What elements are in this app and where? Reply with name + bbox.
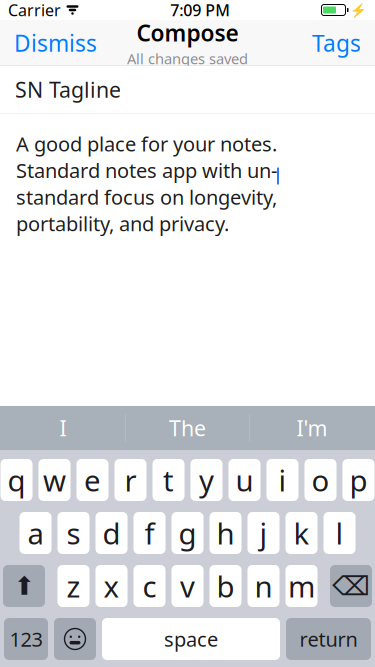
button[interactable]: space xyxy=(102,618,280,660)
staticText: x xyxy=(103,566,119,605)
staticText: m xyxy=(288,566,315,605)
staticText: u xyxy=(235,460,253,499)
staticText: f xyxy=(144,513,154,552)
staticText: b xyxy=(216,566,234,605)
staticText: A good place for your notes. Standard no… xyxy=(16,130,277,237)
button[interactable]: l xyxy=(323,512,355,554)
staticText: Compose xyxy=(136,18,238,48)
staticText: j xyxy=(259,513,267,552)
button[interactable]: The xyxy=(125,406,249,450)
staticText: p xyxy=(349,460,367,499)
staticText: Dismiss xyxy=(14,28,97,58)
staticText: space xyxy=(164,626,218,652)
staticText: s xyxy=(66,513,80,552)
button[interactable]: y xyxy=(190,459,222,501)
button[interactable]: a xyxy=(19,512,51,554)
staticText: w xyxy=(43,460,66,499)
staticText: c xyxy=(142,566,156,605)
button[interactable]: g xyxy=(171,512,203,554)
staticText: t xyxy=(163,460,174,499)
staticText: r xyxy=(124,460,136,499)
staticText: e xyxy=(84,460,101,499)
button[interactable]: return xyxy=(286,618,371,660)
staticText: n xyxy=(254,566,272,605)
staticText: All changes saved xyxy=(127,49,248,68)
button[interactable]: o xyxy=(304,459,336,501)
staticText: a xyxy=(27,513,43,552)
button[interactable]: j xyxy=(247,512,279,554)
staticText: return xyxy=(299,626,357,652)
staticText: I'm xyxy=(296,414,327,442)
button[interactable]: p xyxy=(342,459,374,501)
staticText: k xyxy=(293,513,309,552)
staticText: ⚡ xyxy=(350,2,367,18)
staticText: Carrier xyxy=(8,0,61,21)
staticText: v xyxy=(180,566,195,605)
button[interactable]: Delete xyxy=(330,565,372,607)
staticText: d xyxy=(102,513,120,552)
button[interactable]: I xyxy=(1,406,125,450)
staticText: i xyxy=(278,460,286,499)
staticText: z xyxy=(66,566,80,605)
button[interactable]: n xyxy=(247,565,279,607)
staticText: o xyxy=(311,460,329,499)
button[interactable]: f xyxy=(133,512,165,554)
button[interactable]: s xyxy=(57,512,89,554)
button[interactable]: v xyxy=(171,565,203,607)
button[interactable]: u xyxy=(228,459,260,501)
button[interactable]: d xyxy=(95,512,127,554)
button[interactable]: Shift xyxy=(3,565,45,607)
button[interactable]: I'm xyxy=(250,406,374,450)
button[interactable]: Dismiss xyxy=(0,20,111,66)
button[interactable]: Emoji keyboard xyxy=(54,618,96,660)
button[interactable]: c xyxy=(133,565,165,607)
staticText: h xyxy=(216,513,234,552)
button[interactable]: q xyxy=(0,459,32,501)
button[interactable]: m xyxy=(285,565,317,607)
staticText: The xyxy=(169,414,206,442)
button[interactable]: z xyxy=(57,565,89,607)
button[interactable]: x xyxy=(95,565,127,607)
staticText: g xyxy=(178,513,196,552)
staticText: ⬆ xyxy=(13,572,34,600)
staticText: q xyxy=(7,460,25,499)
button[interactable]: k xyxy=(285,512,317,554)
staticText: ⌫ xyxy=(332,571,370,601)
button[interactable]: t xyxy=(152,459,184,501)
staticText: SN Tagline xyxy=(15,75,121,104)
button[interactable]: h xyxy=(209,512,241,554)
staticText: l xyxy=(335,513,343,552)
staticText: Tags xyxy=(312,28,361,58)
button[interactable]: 123 xyxy=(4,618,48,660)
staticText: 7:09 PM xyxy=(170,0,230,21)
button[interactable]: e xyxy=(76,459,108,501)
button[interactable]: Tags xyxy=(298,20,375,66)
button[interactable]: i xyxy=(266,459,298,501)
button[interactable]: b xyxy=(209,565,241,607)
button[interactable]: w xyxy=(38,459,70,501)
staticText: 123 xyxy=(9,626,42,652)
button[interactable]: r xyxy=(114,459,146,501)
staticText: y xyxy=(199,460,214,499)
staticText: I xyxy=(59,414,66,442)
